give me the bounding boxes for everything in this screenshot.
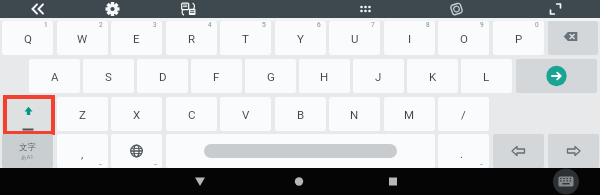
staticText: L bbox=[483, 70, 490, 83]
button[interactable] bbox=[546, 0, 565, 18]
staticText: F bbox=[213, 70, 220, 83]
staticText: 8 bbox=[426, 21, 430, 29]
staticText: Q bbox=[24, 32, 32, 45]
staticText: H bbox=[320, 70, 329, 83]
button[interactable]: D bbox=[137, 59, 188, 93]
staticText: T bbox=[242, 32, 249, 45]
button[interactable] bbox=[103, 0, 122, 18]
staticText: 4 bbox=[208, 21, 212, 29]
button[interactable] bbox=[186, 168, 214, 195]
staticText: _ bbox=[480, 158, 483, 166]
button[interactable]: . bbox=[438, 134, 489, 168]
staticText: X bbox=[133, 108, 141, 121]
staticText: 9 bbox=[480, 21, 484, 29]
button[interactable]: M bbox=[384, 97, 435, 131]
button[interactable]: C bbox=[166, 97, 217, 131]
button[interactable]: _ bbox=[111, 134, 162, 168]
staticText: _ bbox=[154, 158, 157, 166]
staticText: あA1 bbox=[21, 153, 34, 161]
button[interactable]: I bbox=[384, 21, 435, 55]
staticText: B bbox=[297, 108, 305, 121]
staticText: Y bbox=[297, 32, 304, 45]
button[interactable]: X bbox=[111, 97, 162, 131]
staticText: . bbox=[460, 147, 464, 160]
staticText: I bbox=[408, 32, 412, 45]
button[interactable] bbox=[356, 0, 375, 18]
staticText: 7 bbox=[371, 21, 375, 29]
staticText: P bbox=[515, 32, 523, 45]
button[interactable] bbox=[179, 0, 198, 18]
button[interactable]: E bbox=[111, 21, 162, 55]
staticText: 0 bbox=[535, 21, 539, 29]
button[interactable] bbox=[447, 0, 466, 18]
button[interactable]: P bbox=[493, 21, 544, 55]
staticText: 5 bbox=[262, 21, 266, 29]
staticText: J bbox=[375, 70, 382, 83]
staticText: / bbox=[461, 108, 466, 121]
button[interactable]: V bbox=[220, 97, 271, 131]
button[interactable] bbox=[548, 134, 599, 168]
staticText: G bbox=[267, 70, 275, 83]
staticText: 文字 bbox=[19, 142, 36, 153]
button[interactable]: / bbox=[438, 97, 489, 131]
staticText: 6 bbox=[317, 21, 321, 29]
button[interactable]: Q bbox=[2, 21, 53, 55]
button[interactable]: F bbox=[191, 59, 242, 93]
staticText: A bbox=[51, 70, 59, 83]
staticText: _ bbox=[99, 158, 102, 166]
staticText: M bbox=[404, 108, 415, 121]
staticText: R bbox=[188, 32, 196, 45]
staticText: 1 bbox=[44, 21, 48, 29]
button[interactable] bbox=[552, 168, 580, 195]
button[interactable]: N bbox=[329, 97, 380, 131]
staticText: Z bbox=[79, 108, 86, 121]
staticText: N bbox=[350, 108, 359, 121]
staticText: W bbox=[77, 32, 88, 45]
button[interactable]: O bbox=[438, 21, 489, 55]
button[interactable]: G bbox=[245, 59, 296, 93]
button[interactable]: K bbox=[407, 59, 458, 93]
button[interactable] bbox=[166, 134, 435, 168]
staticText: D bbox=[159, 70, 167, 83]
button[interactable]: T bbox=[220, 21, 271, 55]
button[interactable] bbox=[28, 0, 47, 18]
button[interactable]: H bbox=[299, 59, 350, 93]
staticText: C bbox=[188, 108, 196, 121]
staticText: U bbox=[351, 32, 359, 45]
button[interactable] bbox=[548, 21, 598, 55]
staticText: K bbox=[429, 70, 437, 83]
button[interactable]: L bbox=[461, 59, 512, 93]
staticText: , bbox=[81, 147, 84, 160]
staticText: 2 bbox=[99, 21, 103, 29]
button[interactable]: W bbox=[57, 21, 108, 55]
staticText: E bbox=[133, 32, 140, 45]
button[interactable] bbox=[285, 168, 313, 195]
button[interactable]: , bbox=[57, 134, 108, 168]
button[interactable] bbox=[493, 134, 544, 168]
button[interactable]: B bbox=[275, 97, 326, 131]
button[interactable]: A bbox=[29, 59, 80, 93]
button[interactable]: S bbox=[83, 59, 134, 93]
button[interactable] bbox=[379, 168, 407, 195]
button[interactable]: J bbox=[353, 59, 404, 93]
staticText: 3 bbox=[153, 21, 157, 29]
button[interactable] bbox=[2, 97, 53, 131]
button[interactable] bbox=[516, 59, 597, 93]
button[interactable]: U bbox=[329, 21, 380, 55]
button[interactable]: 文字 bbox=[2, 134, 53, 168]
button[interactable]: Z bbox=[57, 97, 108, 131]
button[interactable]: Y bbox=[275, 21, 326, 55]
staticText: V bbox=[242, 108, 250, 121]
staticText: S bbox=[105, 70, 112, 83]
staticText: O bbox=[460, 32, 468, 45]
button[interactable]: R bbox=[166, 21, 217, 55]
